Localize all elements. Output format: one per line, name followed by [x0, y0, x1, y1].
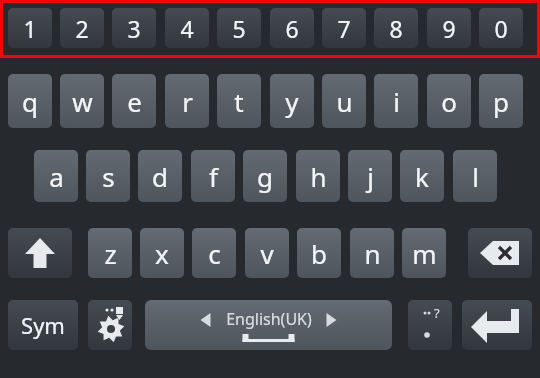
button[interactable]: c: [192, 228, 236, 278]
staticText: y: [285, 84, 299, 119]
button[interactable]: d: [138, 150, 182, 202]
button[interactable]: 3: [112, 8, 156, 48]
button[interactable]: t: [217, 74, 261, 128]
staticText: a: [49, 159, 64, 194]
button[interactable]: x: [140, 228, 184, 278]
button[interactable]: y: [270, 74, 314, 128]
button[interactable]: 4: [165, 8, 209, 48]
staticText: s: [102, 159, 115, 194]
button[interactable]: b: [297, 228, 341, 278]
button[interactable]: m: [402, 228, 446, 278]
button[interactable]: j: [348, 150, 392, 202]
button[interactable]: l: [453, 150, 497, 202]
staticText: z: [104, 236, 117, 271]
button[interactable]: z: [88, 228, 132, 278]
button[interactable]: v: [245, 228, 289, 278]
button[interactable]: Sym: [8, 300, 78, 350]
staticText: 4: [180, 13, 194, 44]
button[interactable]: r: [165, 74, 209, 128]
staticText: r: [182, 84, 193, 119]
button[interactable]: s: [86, 150, 130, 202]
button[interactable]: 7: [322, 8, 366, 48]
button[interactable]: w: [60, 74, 104, 128]
staticText: k: [415, 159, 429, 194]
staticText: t: [234, 84, 244, 119]
button[interactable]: e: [112, 74, 156, 128]
staticText: 2: [75, 13, 89, 44]
button[interactable]: k: [400, 150, 444, 202]
button[interactable]: 2: [60, 8, 104, 48]
button[interactable]: g: [243, 150, 287, 202]
button[interactable]: Shift: [8, 228, 72, 278]
staticText: j: [367, 159, 374, 194]
staticText: 0: [494, 13, 508, 44]
staticText: b: [311, 236, 327, 271]
staticText: 8: [389, 13, 403, 44]
button[interactable]: f: [191, 150, 235, 202]
staticText: v: [260, 236, 274, 271]
staticText: n: [364, 236, 381, 271]
staticText: 6: [285, 13, 299, 44]
staticText: d: [152, 159, 168, 194]
staticText: u: [336, 84, 353, 119]
staticText: ?: [434, 304, 440, 322]
staticText: h: [310, 159, 327, 194]
button[interactable]: Period and punctuation: [408, 300, 452, 350]
staticText: l: [472, 159, 479, 194]
staticText: Sym: [21, 310, 65, 340]
button[interactable]: h: [296, 150, 340, 202]
button[interactable]: 8: [374, 8, 418, 48]
button[interactable]: 5: [217, 8, 261, 48]
staticText: English(UK): [226, 308, 312, 330]
button[interactable]: a: [34, 150, 78, 202]
staticText: i: [393, 84, 400, 119]
staticText: o: [441, 84, 457, 119]
staticText: q: [22, 84, 38, 119]
staticText: f: [209, 159, 218, 194]
staticText: 1: [23, 13, 37, 44]
button[interactable]: 0: [479, 8, 523, 48]
button[interactable]: Settings: [88, 300, 132, 350]
staticText: 5: [232, 13, 246, 44]
button[interactable]: q: [8, 74, 52, 128]
button[interactable]: Space, English (UK): [145, 300, 392, 350]
staticText: g: [257, 159, 273, 194]
staticText: x: [155, 236, 169, 271]
staticText: e: [127, 84, 142, 119]
button[interactable]: o: [427, 74, 471, 128]
button[interactable]: p: [479, 74, 523, 128]
button[interactable]: Enter: [462, 300, 532, 350]
button[interactable]: Backspace: [468, 228, 532, 278]
staticText: 9: [442, 13, 456, 44]
button[interactable]: i: [374, 74, 418, 128]
staticText: c: [208, 236, 221, 271]
staticText: 3: [127, 13, 141, 44]
button[interactable]: n: [350, 228, 394, 278]
button[interactable]: 6: [270, 8, 314, 48]
staticText: w: [72, 84, 93, 119]
staticText: 7: [337, 13, 351, 44]
staticText: m: [412, 236, 437, 271]
button[interactable]: u: [322, 74, 366, 128]
button[interactable]: 1: [8, 8, 52, 48]
button[interactable]: 9: [427, 8, 471, 48]
staticText: p: [493, 84, 509, 119]
